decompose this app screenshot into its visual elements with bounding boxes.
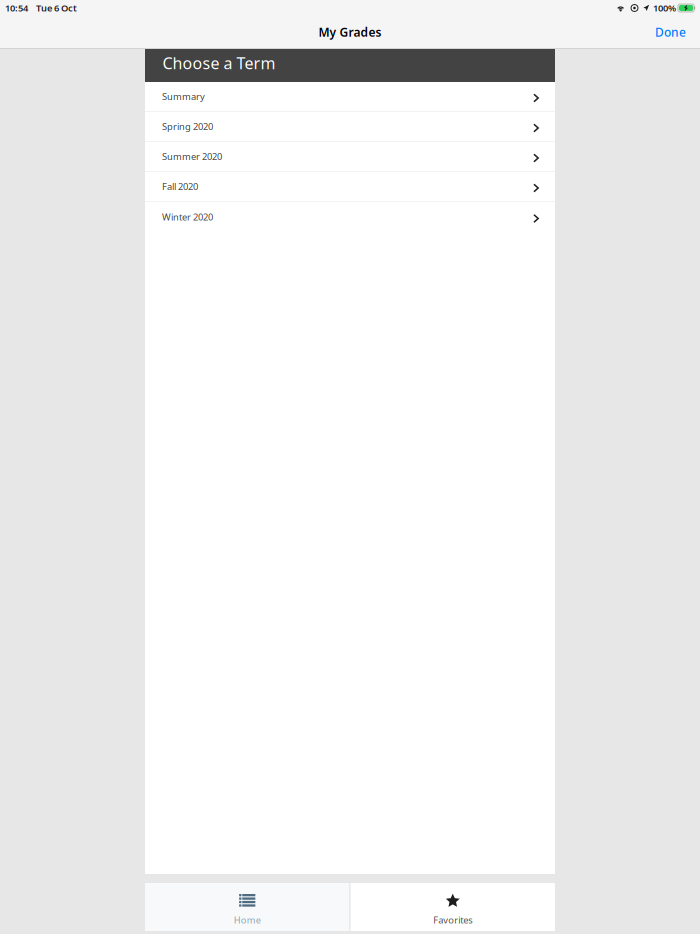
button[interactable]: Summary bbox=[145, 82, 555, 112]
staticText: Summary bbox=[162, 90, 205, 103]
staticText: Choose a Term bbox=[162, 52, 275, 74]
button[interactable]: Home bbox=[145, 883, 349, 931]
button[interactable]: Spring 2020 bbox=[145, 112, 555, 142]
staticText: Winter 2020 bbox=[162, 211, 213, 223]
staticText: Fall 2020 bbox=[162, 180, 198, 193]
button[interactable]: Winter 2020 bbox=[145, 202, 555, 232]
staticText: Tue 6 Oct bbox=[36, 2, 77, 14]
button[interactable]: Fall 2020 bbox=[145, 172, 555, 202]
staticText: 100% bbox=[653, 2, 676, 14]
staticText: My Grades bbox=[318, 24, 381, 40]
staticText: Favorites bbox=[433, 914, 472, 926]
staticText: Done bbox=[655, 24, 686, 40]
button[interactable]: Favorites bbox=[350, 883, 555, 931]
button[interactable]: Done bbox=[645, 18, 700, 46]
staticText: Summer 2020 bbox=[162, 150, 222, 163]
button[interactable]: Summer 2020 bbox=[145, 142, 555, 172]
staticText: Spring 2020 bbox=[162, 120, 213, 133]
staticText: Home bbox=[234, 914, 261, 926]
staticText: 10:54 bbox=[5, 2, 28, 14]
